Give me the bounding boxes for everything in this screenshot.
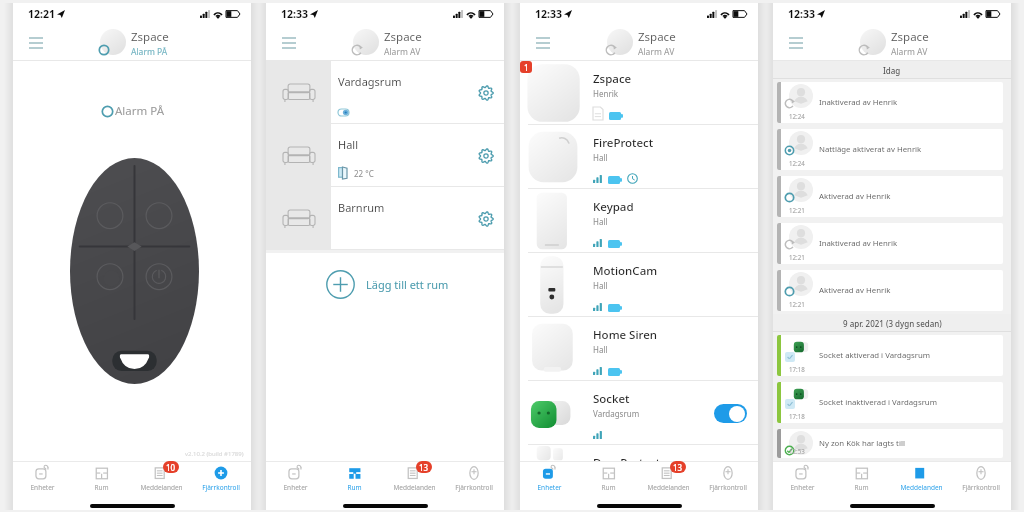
button[interactable]: Lägg till ett rum	[326, 270, 449, 299]
button[interactable]: Room settings	[475, 145, 497, 167]
staticText: Rum	[601, 483, 616, 492]
staticText: v2.10.2 (build #1789)	[185, 450, 244, 458]
staticText: 17:18	[789, 365, 805, 373]
staticText: Zspace	[593, 71, 632, 87]
button[interactable]: Inaktiverad av Henrik	[777, 223, 1003, 264]
staticText: Zspace	[891, 29, 929, 45]
staticText: Aktiverad av Henrik	[819, 191, 891, 202]
staticText: 12:33	[788, 7, 815, 21]
staticText: Lägg till ett rum	[366, 277, 449, 292]
staticText: Hall	[593, 152, 608, 163]
button[interactable]: 13	[638, 461, 698, 495]
staticText: 10	[166, 462, 176, 473]
staticText: Enheter	[30, 483, 55, 492]
staticText: Fjärrkontroll	[455, 483, 493, 492]
staticText: Socket inaktiverad i Vardagsrum	[819, 397, 937, 408]
button[interactable]: Aktiverad av Henrik	[777, 176, 1003, 217]
button[interactable]: Vardagsrum	[266, 61, 504, 124]
button[interactable]: Enheter	[520, 461, 579, 495]
staticText: Meddelanden	[393, 483, 436, 492]
staticText: 12:21	[789, 300, 805, 308]
button[interactable]: Ny zon Kök har lagts till	[777, 429, 1003, 458]
button[interactable]: Menu	[276, 30, 302, 56]
button[interactable]: Fjärrkontroll	[191, 461, 251, 495]
staticText: 22 °C	[354, 168, 374, 179]
staticText: Alarm AV	[638, 46, 675, 58]
button[interactable]: Menu	[23, 30, 49, 56]
staticText: Meddelanden	[900, 483, 943, 492]
button[interactable]: Barnrum	[266, 187, 504, 250]
staticText: Idag	[883, 65, 901, 76]
button[interactable]: Home Siren	[520, 317, 758, 381]
staticText: Hall	[593, 216, 608, 227]
button[interactable]: Fjärrkontroll	[698, 461, 758, 495]
staticText: Vardagsrum	[338, 74, 402, 89]
button[interactable]: Room settings	[475, 208, 497, 230]
staticText: Hall	[338, 137, 358, 152]
staticText: Meddelanden	[140, 483, 183, 492]
staticText: Hall	[593, 344, 608, 355]
staticText: Home Siren	[593, 327, 657, 343]
staticText: Ny zon Kök har lagts till	[819, 438, 905, 449]
button[interactable]: Socket aktiverad i Vardagsrum	[777, 335, 1003, 376]
button[interactable]: MotionCam	[520, 253, 758, 317]
staticText: 9 apr. 2021 (3 dygn sedan)	[843, 318, 942, 329]
staticText: Barnrum	[338, 200, 385, 215]
staticText: 12:21	[28, 7, 55, 21]
button[interactable]: 13	[384, 461, 444, 495]
staticText: Alarm AV	[891, 46, 928, 58]
staticText: 13	[419, 462, 429, 473]
staticText: Rum	[347, 483, 362, 492]
staticText: Socket	[593, 391, 630, 407]
staticText: 12:21	[789, 253, 805, 261]
button[interactable]: Rum	[325, 461, 384, 495]
button[interactable]: Rum	[832, 461, 891, 495]
button[interactable]: FireProtect	[520, 125, 758, 189]
staticText: Nattläge aktiverat av Henrik	[819, 144, 922, 155]
staticText: 17:18	[789, 412, 805, 420]
staticText: Fjärrkontroll	[202, 483, 240, 492]
button[interactable]: Toggle socket	[714, 404, 747, 423]
staticText: Inaktiverad av Henrik	[819, 238, 898, 249]
staticText: 12:33	[535, 7, 562, 21]
button[interactable]: Enheter	[266, 461, 325, 495]
button[interactable]: Rum	[72, 461, 131, 495]
button[interactable]: Inaktiverad av Henrik	[777, 82, 1003, 123]
staticText: Vardagsrum	[593, 408, 640, 419]
staticText: Hall	[593, 280, 608, 291]
button[interactable]: Socket inaktiverad i Vardagsrum	[777, 382, 1003, 423]
button[interactable]: Enheter	[13, 461, 72, 495]
button[interactable]: 1	[520, 61, 758, 125]
staticText: 12:33	[281, 7, 308, 21]
button[interactable]: DoorProtect	[520, 445, 758, 461]
button[interactable]: Enheter	[773, 461, 832, 495]
staticText: Alarm PÅ	[115, 103, 164, 119]
button[interactable]: Menu	[530, 30, 556, 56]
button[interactable]: Rum	[579, 461, 638, 495]
staticText: Henrik	[593, 88, 619, 99]
button[interactable]: Fjärrkontroll	[444, 461, 504, 495]
button[interactable]: Nattläge aktiverat av Henrik	[777, 129, 1003, 170]
staticText: Alarm AV	[384, 46, 421, 58]
staticText: Fjärrkontroll	[709, 483, 747, 492]
staticText: MotionCam	[593, 263, 658, 279]
staticText: Rum	[94, 483, 109, 492]
staticText: Zspace	[131, 29, 169, 45]
staticText: Enheter	[537, 483, 562, 492]
button[interactable]: Aktiverad av Henrik	[777, 270, 1003, 311]
button[interactable]: Room settings	[475, 82, 497, 104]
button[interactable]: Menu	[783, 30, 809, 56]
button[interactable]: 10	[131, 461, 191, 495]
button[interactable]: Keypad	[520, 189, 758, 253]
staticText: Enheter	[790, 483, 815, 492]
button[interactable]: Fjärrkontroll	[951, 461, 1011, 495]
staticText: DoorProtect	[593, 455, 661, 461]
button[interactable]: Socket	[520, 381, 758, 445]
staticText: Zspace	[638, 29, 676, 45]
staticText: 12:24	[789, 112, 805, 120]
staticText: Zspace	[384, 29, 422, 45]
staticText: Socket aktiverad i Vardagsrum	[819, 350, 931, 361]
button[interactable]: Meddelanden	[891, 461, 951, 495]
staticText: Inaktiverad av Henrik	[819, 97, 898, 108]
button[interactable]: Hall	[266, 124, 504, 187]
